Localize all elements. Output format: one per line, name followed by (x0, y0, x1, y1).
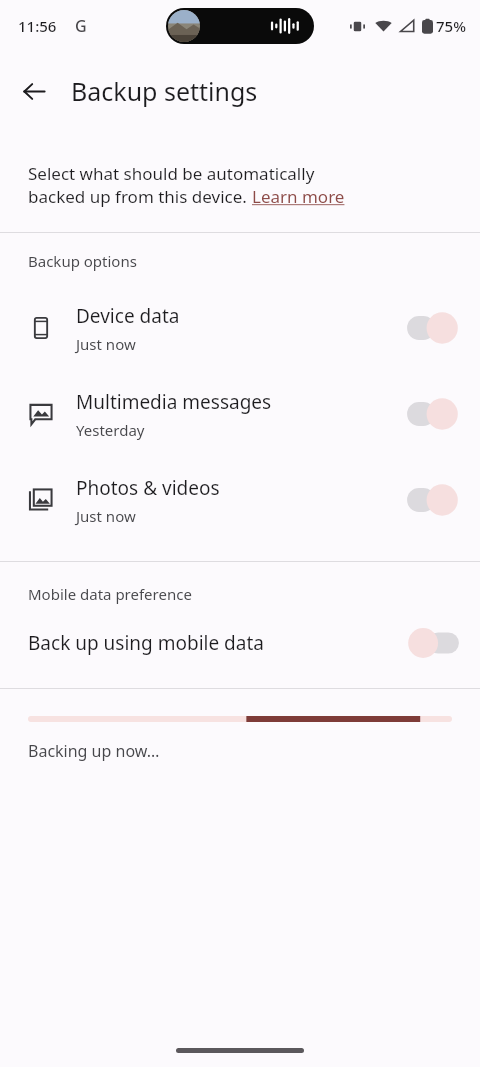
staticText: G (75, 15, 87, 37)
staticText: Photos & videos (76, 475, 220, 501)
staticText: Backing up now… (28, 740, 160, 762)
staticText: Yesterday (76, 420, 145, 440)
staticText: Back up using mobile data (28, 630, 406, 656)
staticText: 11:56 (18, 16, 57, 36)
button[interactable] (406, 311, 460, 345)
button[interactable]: Learn more (252, 185, 345, 208)
button[interactable] (406, 483, 460, 517)
staticText: Select what should be automatically (28, 162, 315, 185)
button[interactable]: Back up using mobile data (0, 620, 480, 666)
button[interactable]: Photos & videos (0, 457, 480, 543)
staticText: Mobile data preference (28, 584, 192, 604)
staticText: Learn more (252, 185, 345, 208)
button[interactable]: Device data (0, 285, 480, 371)
button[interactable]: Back (10, 67, 58, 115)
staticText: Just now (76, 506, 136, 526)
staticText: backed up from this device. (28, 185, 252, 208)
staticText: 75% (436, 16, 466, 36)
staticText: Device data (76, 303, 180, 329)
button[interactable] (406, 397, 460, 431)
staticText: Multimedia messages (76, 389, 272, 415)
button[interactable]: Multimedia messages (0, 371, 480, 457)
staticText: Backup settings (71, 74, 258, 108)
staticText: Just now (76, 334, 136, 354)
staticText: Backup options (28, 251, 137, 271)
button[interactable] (406, 626, 460, 660)
